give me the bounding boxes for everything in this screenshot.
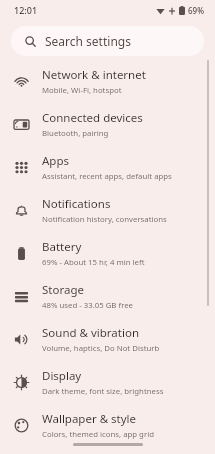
staticText: 12:01 [14,4,38,16]
button[interactable]: Storage [0,275,215,318]
button[interactable]: Wallpaper & style [0,404,215,447]
staticText: Storage [42,282,84,298]
staticText: 69% - About 15 hr, 4 min left [42,257,145,268]
staticText: Battery [42,239,82,255]
staticText: Apps [42,153,70,169]
staticText: Volume, haptics, Do Not Disturb [42,343,160,354]
button[interactable]: Battery [0,232,215,275]
staticText: Wallpaper & style [42,411,137,427]
staticText: Mobile, Wi-Fi, hotspot [42,85,122,96]
staticText: Notifications [42,196,111,212]
staticText: Dark theme, font size, brightness [42,386,164,397]
button[interactable]: Search settings [11,26,204,56]
button[interactable]: Apps [0,146,215,189]
staticText: Sound & vibration [42,325,139,341]
button[interactable]: Display [0,361,215,404]
staticText: Colors, themed icons, app grid [42,429,154,440]
button[interactable]: Network & internet [0,60,215,103]
button[interactable]: Connected devices [0,103,215,146]
staticText: Connected devices [42,110,143,126]
staticText: 69% [188,5,204,16]
staticText: Display [42,368,82,384]
staticText: Notification history, conversations [42,214,167,225]
staticText: Assistant, recent apps, default apps [42,171,172,182]
button[interactable]: Notifications [0,189,215,232]
staticText: 48% used - 33.05 GB free [42,300,134,311]
staticText: Search settings [45,33,131,49]
staticText: Bluetooth, pairing [42,128,109,139]
staticText: Network & internet [42,67,146,83]
button[interactable]: Sound & vibration [0,318,215,361]
